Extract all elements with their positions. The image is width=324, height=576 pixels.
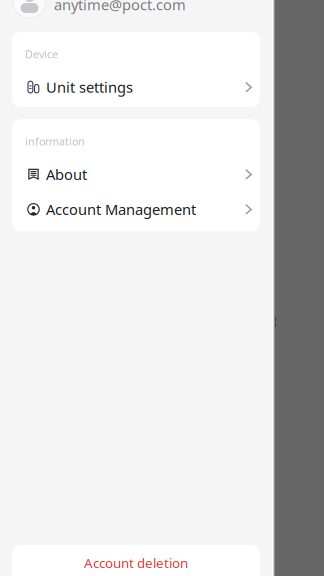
staticText: Unit settings (46, 77, 133, 97)
staticText: anytime@poct.com (54, 0, 186, 14)
button[interactable]: Account deletion (12, 545, 260, 576)
staticText: Device (25, 47, 58, 61)
staticText: About (46, 165, 87, 184)
staticText: Account Management (46, 200, 196, 219)
staticText: information (25, 134, 85, 148)
button[interactable]: Account Management (12, 192, 260, 226)
button[interactable]: Unit settings (12, 70, 260, 104)
staticText: Account deletion (84, 554, 188, 572)
button[interactable]: About (12, 157, 260, 191)
